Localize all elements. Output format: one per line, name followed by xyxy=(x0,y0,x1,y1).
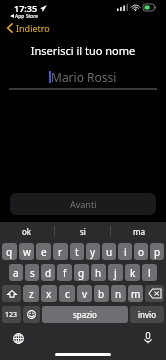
staticText: m xyxy=(131,287,141,301)
button[interactable]: Dictate xyxy=(140,330,156,346)
button[interactable]: x xyxy=(41,285,57,302)
button[interactable]: Indietro xyxy=(4,20,53,36)
staticText: e xyxy=(41,245,47,259)
button[interactable]: c xyxy=(59,285,75,302)
staticText: w xyxy=(23,245,31,259)
button[interactable]: f xyxy=(57,264,72,281)
button[interactable]: q xyxy=(2,243,17,260)
button[interactable]: e xyxy=(36,243,51,260)
button[interactable]: n xyxy=(111,285,126,302)
staticText: 123 xyxy=(5,310,18,320)
staticText: k xyxy=(130,266,136,280)
staticText: Avanti xyxy=(70,198,97,210)
button[interactable]: d xyxy=(41,264,55,281)
staticText: Inserisci il tuo nome xyxy=(0,43,166,58)
staticText: Mario Rossi xyxy=(51,69,117,85)
button[interactable]: m xyxy=(128,285,143,302)
staticText: 17:35 xyxy=(14,2,38,14)
staticText: g xyxy=(78,266,85,280)
staticText: i xyxy=(124,245,127,259)
button[interactable]: 123 xyxy=(2,306,21,323)
button[interactable]: w xyxy=(19,243,34,260)
button[interactable]: t xyxy=(70,243,84,260)
button[interactable]: p xyxy=(150,243,164,260)
button[interactable]: Backspace xyxy=(145,285,164,302)
staticText: spazio xyxy=(73,309,97,320)
button[interactable]: si xyxy=(55,222,110,240)
button[interactable]: i xyxy=(118,243,132,260)
button[interactable]: j xyxy=(108,264,123,281)
staticText: r xyxy=(58,245,63,259)
staticText: d xyxy=(45,266,52,280)
staticText: b xyxy=(98,287,105,301)
staticText: n xyxy=(115,287,122,301)
button[interactable]: o xyxy=(134,243,148,260)
button[interactable]: Avanti xyxy=(10,193,156,215)
button[interactable]: z xyxy=(23,285,39,302)
staticText: h xyxy=(95,266,102,280)
staticText: j xyxy=(114,266,117,280)
button[interactable]: r xyxy=(53,243,68,260)
button[interactable]: h xyxy=(91,264,106,281)
button[interactable]: spazio xyxy=(42,306,128,323)
button[interactable]: s xyxy=(25,264,39,281)
staticText: invio xyxy=(138,309,156,320)
staticText: o xyxy=(138,245,145,259)
button[interactable]: ok xyxy=(0,222,54,240)
staticText: ok xyxy=(22,226,32,237)
button[interactable]: Emoji xyxy=(23,306,40,323)
staticText: v xyxy=(82,287,88,301)
button[interactable]: l xyxy=(142,264,157,281)
button[interactable]: u xyxy=(102,243,116,260)
staticText: u xyxy=(106,245,113,259)
staticText: c xyxy=(65,287,70,301)
staticText: Indietro xyxy=(16,22,50,34)
staticText: si xyxy=(80,226,86,237)
staticText: a xyxy=(13,266,19,280)
button[interactable]: b xyxy=(94,285,109,302)
button[interactable]: Mario Rossi xyxy=(0,69,166,85)
staticText: f xyxy=(63,266,67,280)
staticText: z xyxy=(29,287,34,301)
staticText: t xyxy=(75,245,79,259)
button[interactable]: a xyxy=(9,264,23,281)
button[interactable]: invio xyxy=(130,306,164,323)
staticText: l xyxy=(148,266,151,280)
button[interactable]: y xyxy=(86,243,100,260)
button[interactable]: v xyxy=(77,285,92,302)
staticText: App Store xyxy=(15,13,39,19)
staticText: s xyxy=(30,266,35,280)
button[interactable]: Change keyboard language xyxy=(10,330,26,346)
staticText: ma xyxy=(133,226,145,237)
staticText: q xyxy=(6,245,13,259)
button[interactable]: k xyxy=(125,264,140,281)
staticText: p xyxy=(154,245,161,259)
button[interactable]: ma xyxy=(111,222,166,240)
staticText: x xyxy=(46,287,52,301)
staticText: y xyxy=(90,245,96,259)
button[interactable]: Shift xyxy=(2,285,21,302)
button[interactable]: g xyxy=(74,264,89,281)
